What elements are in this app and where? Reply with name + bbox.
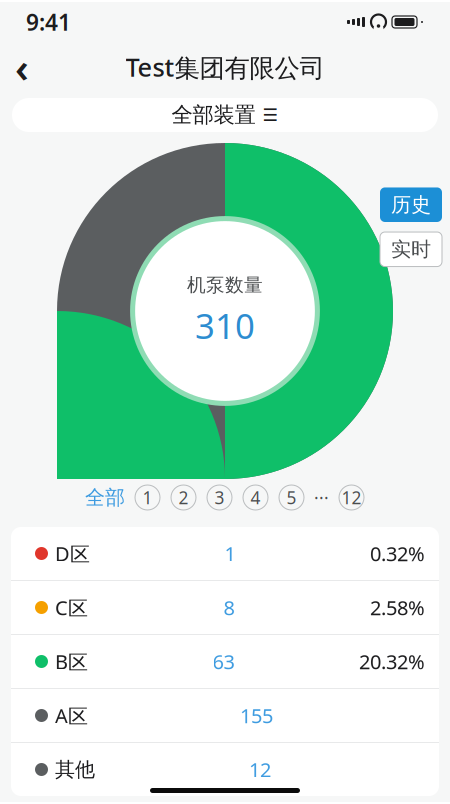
button[interactable]: 1 [134,484,161,511]
staticText: 历史 [391,192,431,217]
staticText: 63 [212,648,234,675]
staticText: 20.32% [359,648,425,675]
staticText: 2.58% [370,594,425,621]
staticText: 9:41 [26,7,71,37]
staticText: ‹ [15,40,29,93]
staticText: 1 [142,486,152,509]
staticText: 8 [223,594,234,621]
staticText: ··· [314,486,329,509]
staticText: 机泵数量 [187,273,263,296]
button[interactable]: 5 [278,484,305,511]
staticText: 12 [249,756,271,783]
staticText: 0.32% [370,540,425,567]
button[interactable]: 历史 [380,187,442,222]
staticText: C区 [55,594,88,621]
staticText: 2 [178,486,188,509]
button[interactable]: A区 [11,689,439,742]
staticText: ☰ [262,105,278,125]
staticText: 全部装置 [171,102,255,128]
staticText: 4 [250,486,260,509]
button[interactable]: Back [0,45,44,89]
staticText: 全部 [85,485,125,510]
staticText: B区 [55,648,88,675]
staticText: 310 [195,302,255,348]
button[interactable]: B区 [11,635,439,688]
button[interactable]: 3 [206,484,233,511]
button[interactable]: C区 [11,581,439,634]
staticText: Test集团有限公司 [125,50,324,84]
button[interactable]: 实时 [380,232,442,267]
staticText: 12 [341,486,361,509]
staticText: 其他 [55,757,95,782]
staticText: A区 [55,702,88,729]
button[interactable]: 4 [242,484,269,511]
staticText: 3 [214,486,224,509]
button[interactable]: 2 [170,484,197,511]
staticText: 实时 [391,237,431,262]
button[interactable]: D区 [11,527,439,580]
button[interactable]: 全部装置 [12,98,438,132]
button[interactable]: 12 [338,484,365,511]
staticText: 155 [240,702,273,729]
staticText: 5 [286,486,296,509]
staticText: D区 [55,540,90,567]
staticText: 1 [224,540,235,567]
button[interactable]: 全部 [85,485,125,510]
button[interactable]: 其他 [11,743,439,796]
